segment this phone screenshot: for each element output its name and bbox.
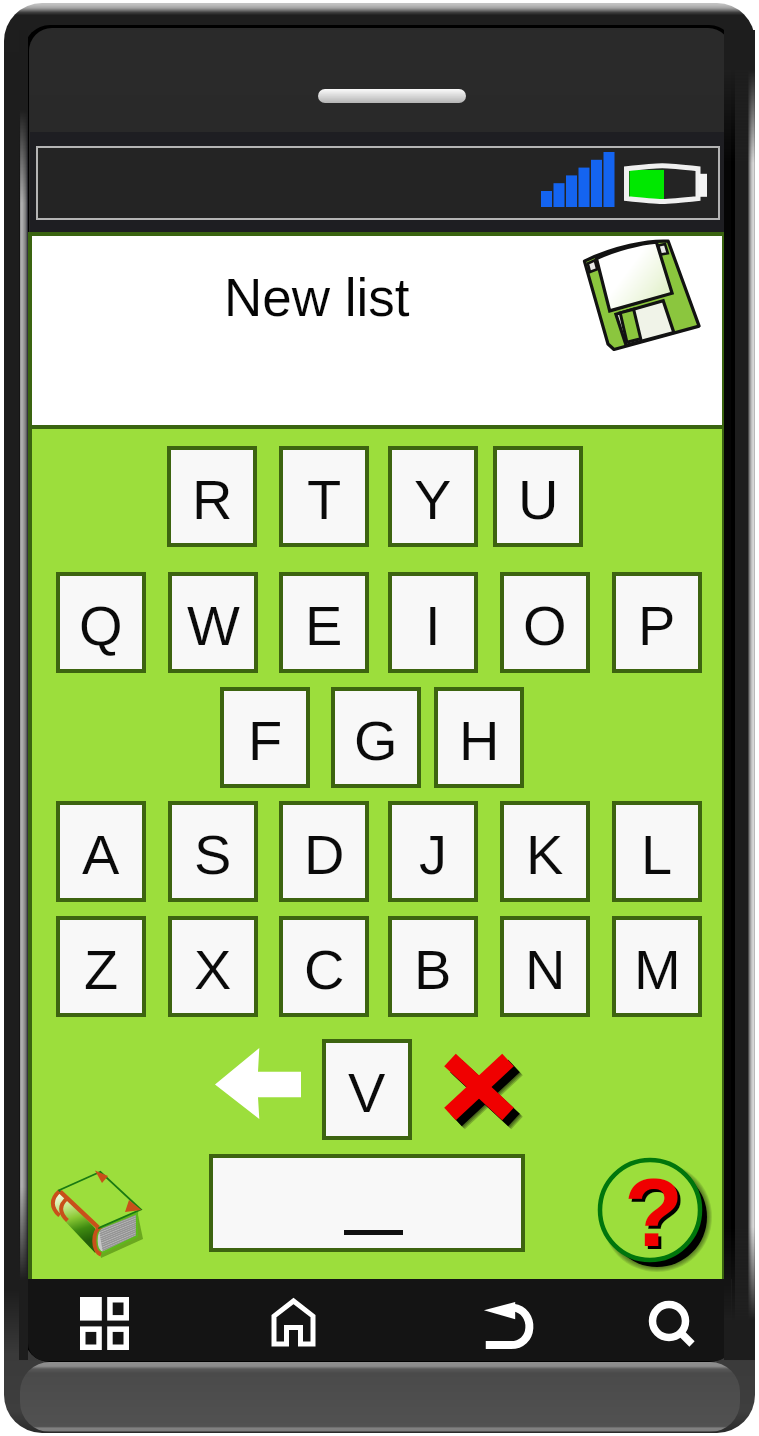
button[interactable]: Backspace <box>215 1048 301 1119</box>
staticText: H <box>459 709 500 772</box>
staticText: Z <box>84 938 119 1001</box>
button[interactable]: Apps <box>80 1297 129 1350</box>
staticText: New list <box>224 268 410 327</box>
staticText: F <box>248 709 283 772</box>
button[interactable]: C <box>279 916 369 1017</box>
staticText: Q <box>79 594 123 657</box>
button[interactable]: A <box>56 801 146 902</box>
staticText: S <box>194 823 232 886</box>
staticText: U <box>518 468 559 531</box>
button[interactable]: Clear <box>442 1052 516 1122</box>
button[interactable]: Z <box>56 916 146 1017</box>
button[interactable]: I <box>388 572 478 673</box>
staticText: E <box>305 594 343 657</box>
button[interactable]: Help <box>598 1158 710 1270</box>
button[interactable]: B <box>388 916 478 1017</box>
button[interactable]: S <box>168 801 258 902</box>
button[interactable]: D <box>279 801 369 902</box>
staticText: W <box>187 594 240 657</box>
button[interactable]: W <box>168 572 258 673</box>
button[interactable] <box>209 1154 525 1252</box>
staticText: G <box>354 709 398 772</box>
button[interactable]: G <box>331 687 421 788</box>
button[interactable]: H <box>434 687 524 788</box>
button[interactable]: X <box>168 916 258 1017</box>
button[interactable]: T <box>279 446 369 547</box>
button[interactable]: Dictionary <box>46 1163 164 1259</box>
staticText: N <box>525 938 566 1001</box>
button[interactable]: P <box>612 572 702 673</box>
staticText: ? <box>624 1158 684 1266</box>
button[interactable]: M <box>612 916 702 1017</box>
button[interactable]: O <box>500 572 590 673</box>
button[interactable]: K <box>500 801 590 902</box>
staticText: O <box>523 594 567 657</box>
staticText: J <box>419 823 447 886</box>
staticText: K <box>526 823 564 886</box>
staticText: P <box>638 594 676 657</box>
staticText: M <box>634 938 681 1001</box>
staticText: X <box>194 938 232 1001</box>
staticText: R <box>192 468 233 531</box>
button[interactable]: Y <box>388 446 478 547</box>
button[interactable]: Home <box>271 1298 316 1347</box>
staticText: Y <box>414 468 452 531</box>
button[interactable]: N <box>500 916 590 1017</box>
staticText: V <box>348 1061 386 1124</box>
button[interactable]: R <box>167 446 257 547</box>
staticText: L <box>641 823 673 886</box>
button[interactable]: Back <box>483 1303 529 1347</box>
staticText: T <box>307 468 342 531</box>
staticText: D <box>304 823 345 886</box>
button[interactable]: V <box>322 1039 412 1140</box>
staticText: A <box>82 823 120 886</box>
staticText: ? <box>627 1161 687 1269</box>
button[interactable]: U <box>493 446 583 547</box>
button[interactable]: L <box>612 801 702 902</box>
staticText: C <box>304 938 345 1001</box>
button[interactable]: Save <box>552 236 704 366</box>
staticText: B <box>414 938 452 1001</box>
button[interactable]: Q <box>56 572 146 673</box>
button[interactable]: New list <box>32 236 722 425</box>
button[interactable]: J <box>388 801 478 902</box>
button[interactable]: F <box>220 687 310 788</box>
staticText: I <box>425 594 441 657</box>
button[interactable]: Search <box>648 1304 698 1354</box>
button[interactable]: E <box>279 572 369 673</box>
